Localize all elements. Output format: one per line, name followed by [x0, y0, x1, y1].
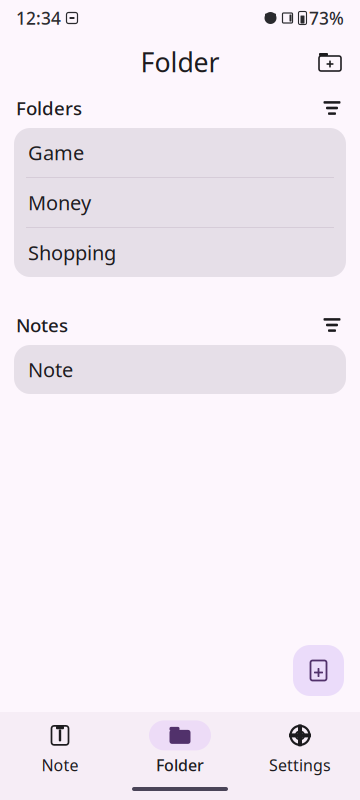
- staticText: Game: [28, 139, 84, 166]
- button[interactable]: Shopping: [14, 228, 346, 277]
- button[interactable]: Settings: [240, 722, 360, 774]
- staticText: Folders: [16, 96, 82, 120]
- staticText: Folder: [140, 44, 219, 80]
- staticText: Folder: [156, 754, 204, 776]
- button[interactable]: Folder: [120, 722, 240, 774]
- button[interactable]: Game: [14, 128, 346, 177]
- button[interactable]: Add folder: [308, 40, 352, 84]
- button[interactable]: New note: [293, 645, 344, 696]
- staticText: Shopping: [28, 239, 116, 266]
- staticText: 73%: [309, 6, 344, 29]
- staticText: Note: [28, 356, 73, 383]
- staticText: Money: [28, 189, 91, 216]
- staticText: Notes: [16, 313, 68, 337]
- staticText: Note: [41, 754, 78, 776]
- button[interactable]: Note: [14, 345, 346, 394]
- button[interactable]: Sort Notes: [312, 309, 352, 341]
- staticText: 12:34: [16, 6, 61, 29]
- button[interactable]: Note: [0, 722, 120, 774]
- button[interactable]: Sort Folders: [312, 92, 352, 124]
- button[interactable]: Money: [14, 178, 346, 227]
- staticText: Settings: [269, 754, 331, 776]
